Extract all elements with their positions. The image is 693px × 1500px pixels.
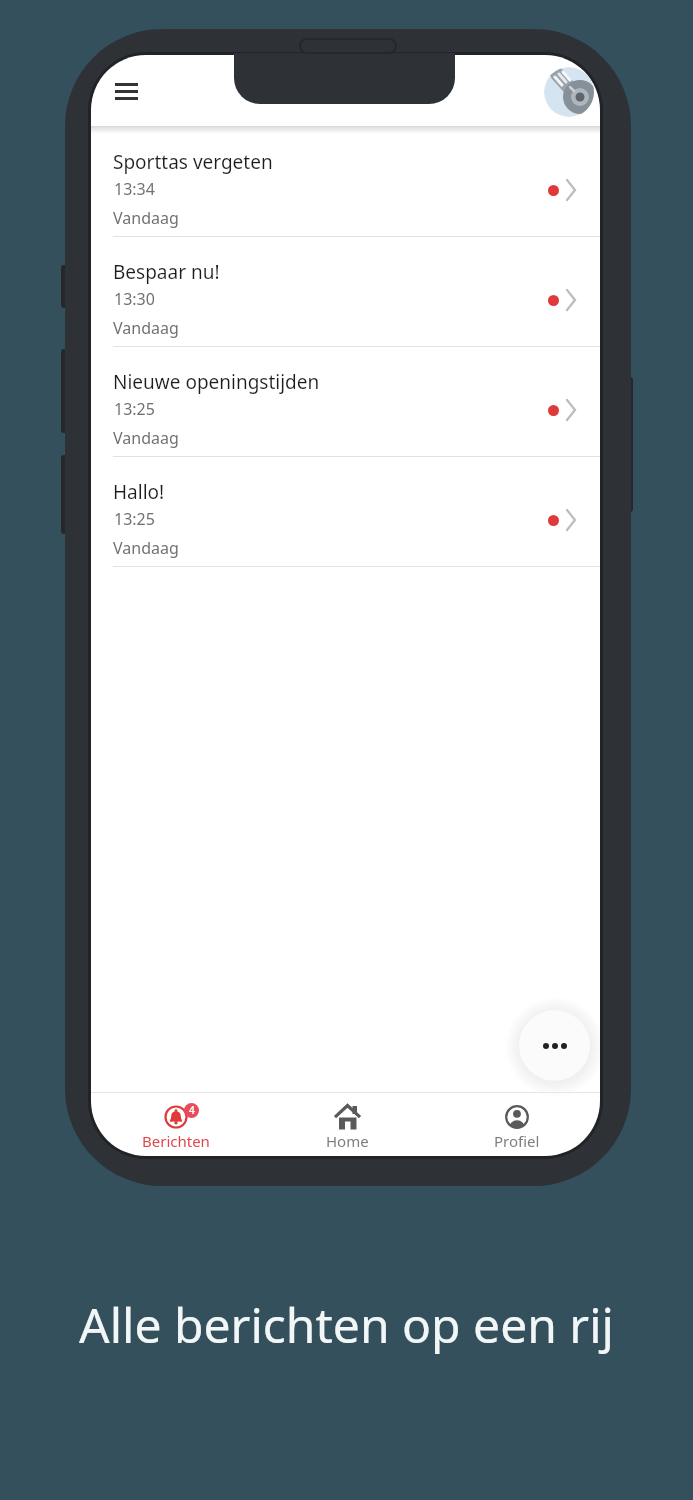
button[interactable]: Hallo! [91,457,600,567]
button[interactable]: Bespaar nu! [91,237,600,347]
staticText: Vandaag [113,317,179,339]
staticText: Vandaag [113,207,179,229]
staticText: 13:30 [114,288,155,310]
staticText: Sporttas vergeten [113,149,273,175]
staticText: 13:25 [114,508,155,530]
button[interactable] [544,67,594,117]
staticText: Nieuwe openingstijden [113,369,320,395]
staticText: Profiel [494,1131,540,1151]
button[interactable] [519,1010,590,1081]
button[interactable]: Profiel [457,1095,577,1153]
button[interactable]: 4 [116,1095,236,1153]
staticText: Bespaar nu! [113,259,220,285]
staticText: Hallo! [113,479,165,505]
staticText: Berichten [142,1131,210,1151]
staticText: 13:25 [114,398,155,420]
staticText: Alle berichten op een rij [79,1292,614,1357]
staticText: Vandaag [113,427,179,449]
button[interactable] [115,83,138,100]
staticText: 13:34 [114,178,155,200]
staticText: 4 [189,1103,195,1115]
button[interactable]: Sporttas vergeten [91,127,600,237]
button[interactable]: Home [287,1095,407,1153]
staticText: Vandaag [113,537,179,559]
staticText: Home [326,1131,369,1151]
button[interactable]: Nieuwe openingstijden [91,347,600,457]
